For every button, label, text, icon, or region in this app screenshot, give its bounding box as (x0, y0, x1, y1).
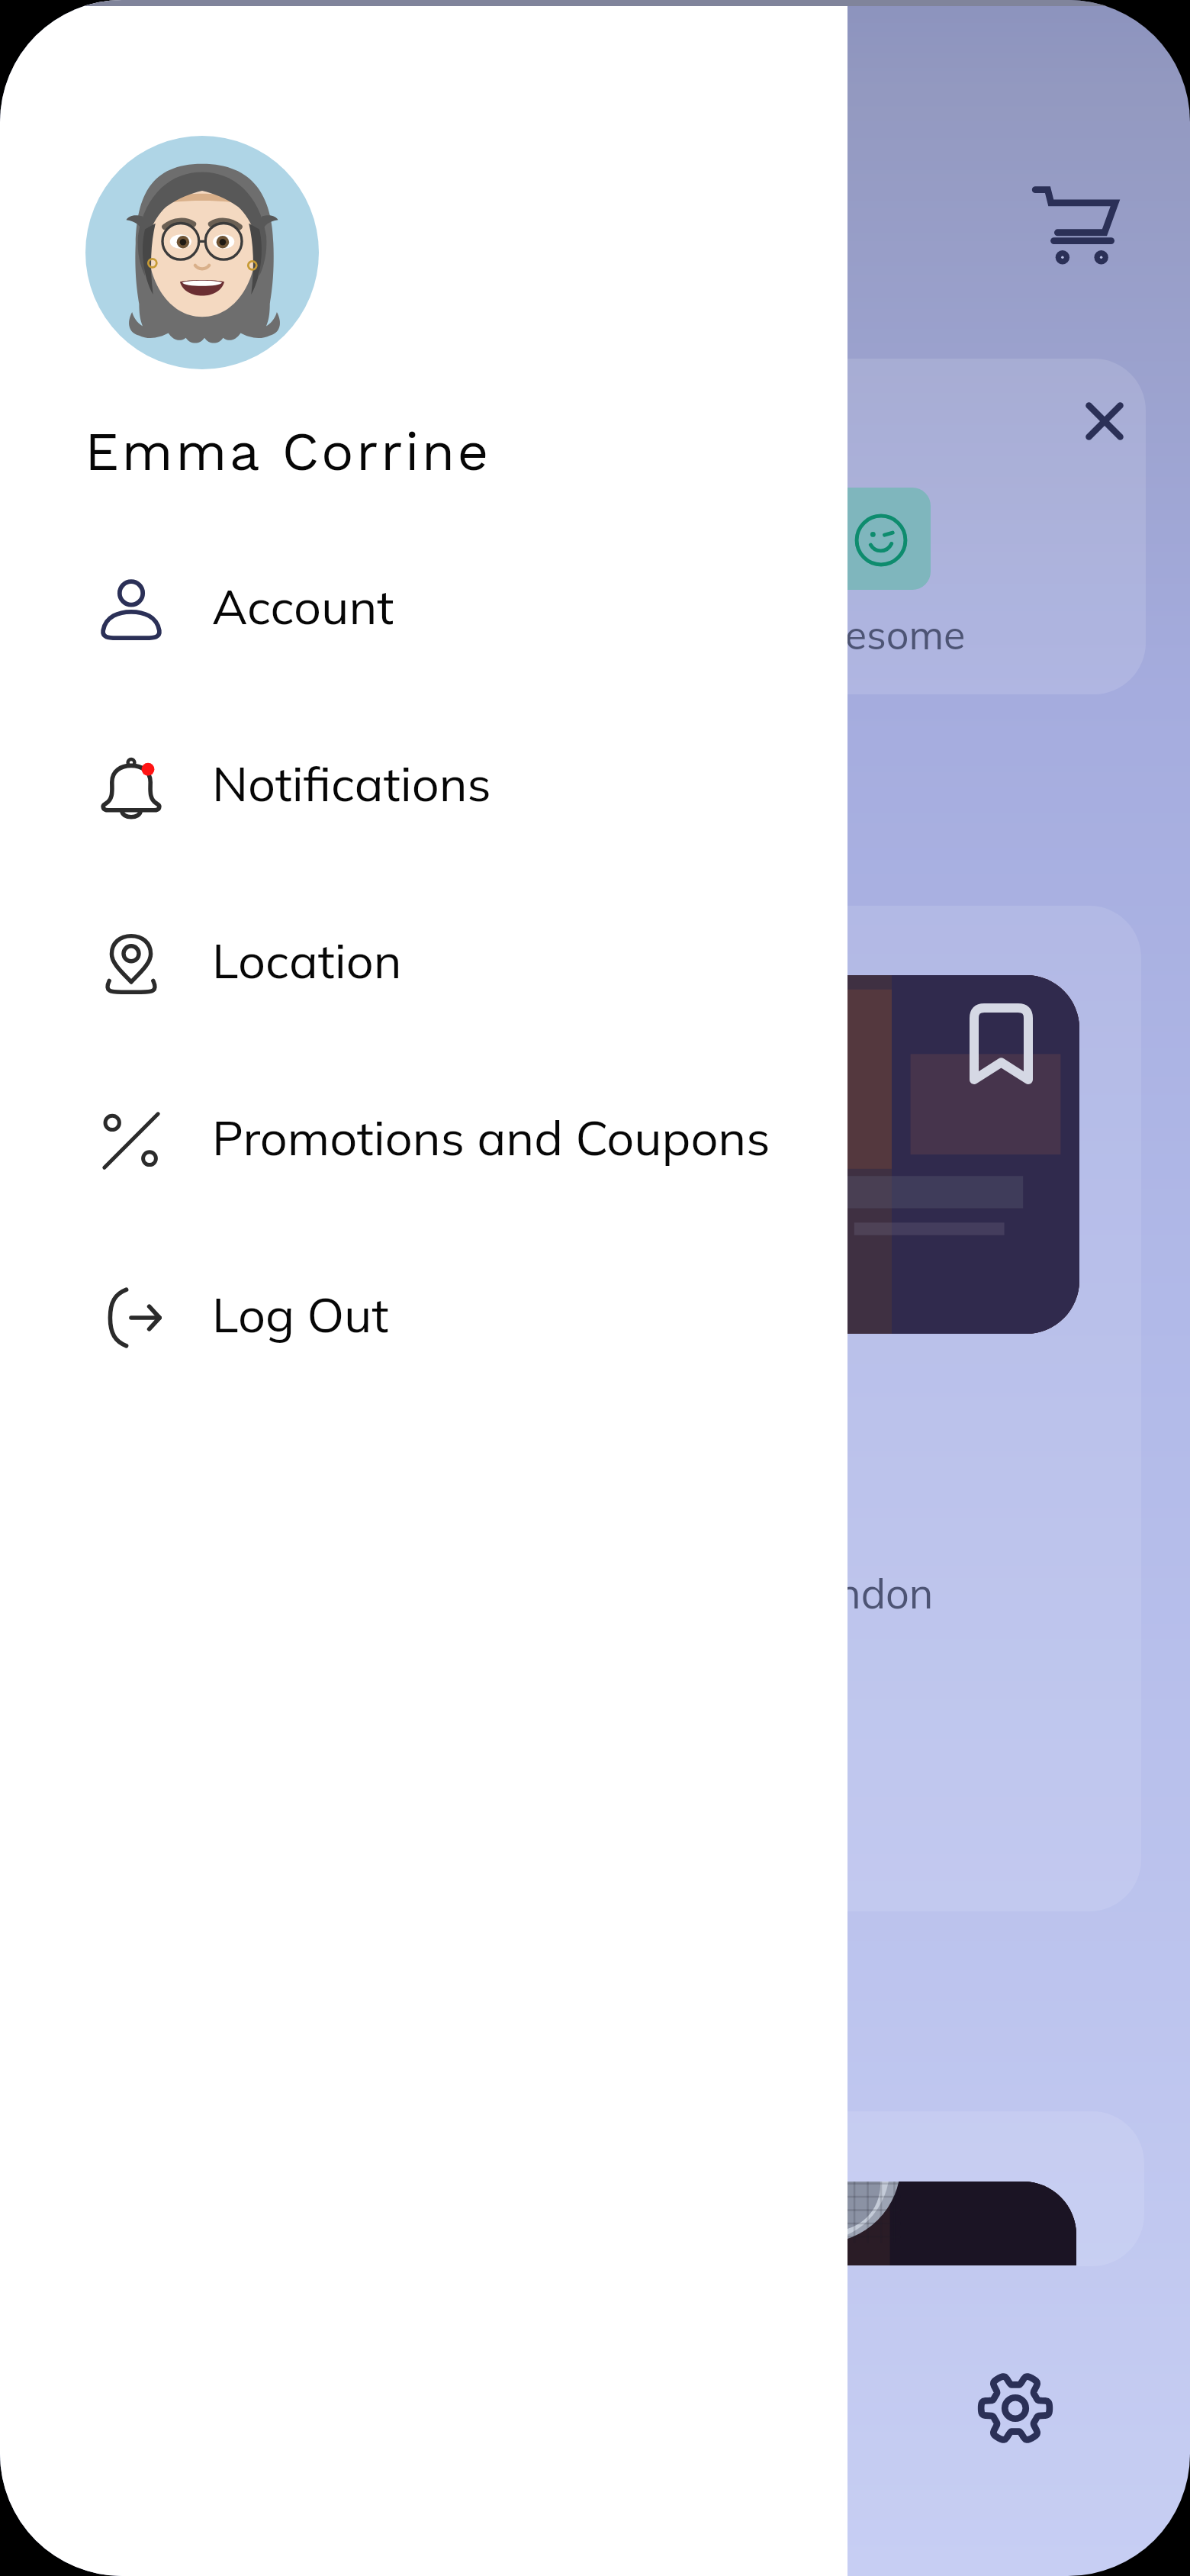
staticText: Log Out (212, 1284, 389, 1344)
staticText: Notifications (212, 753, 491, 813)
button[interactable]: Account (0, 517, 847, 694)
button[interactable]: Cart (1022, 172, 1126, 276)
staticText: Account (212, 576, 394, 636)
button[interactable]: Settings (958, 2351, 1073, 2465)
button[interactable] (580, 2111, 1144, 2266)
staticText: Emma Corrine (85, 420, 491, 483)
button[interactable]: Notifications (0, 694, 847, 871)
staticText: Awesome (783, 610, 966, 659)
button[interactable] (584, 359, 1146, 694)
button[interactable]: Log Out (0, 1225, 847, 1402)
staticText: Location (212, 930, 402, 990)
button[interactable]: Close (1066, 383, 1143, 459)
button[interactable]: Profile picture (85, 136, 319, 369)
button[interactable]: Promotions and Coupons (0, 1048, 847, 1225)
staticText: London (791, 1567, 934, 1619)
staticText: Promotions and Coupons (212, 1107, 770, 1167)
button[interactable]: Bookmark (970, 1003, 1033, 1084)
button[interactable]: Location (0, 871, 847, 1048)
button[interactable] (580, 906, 1141, 1911)
